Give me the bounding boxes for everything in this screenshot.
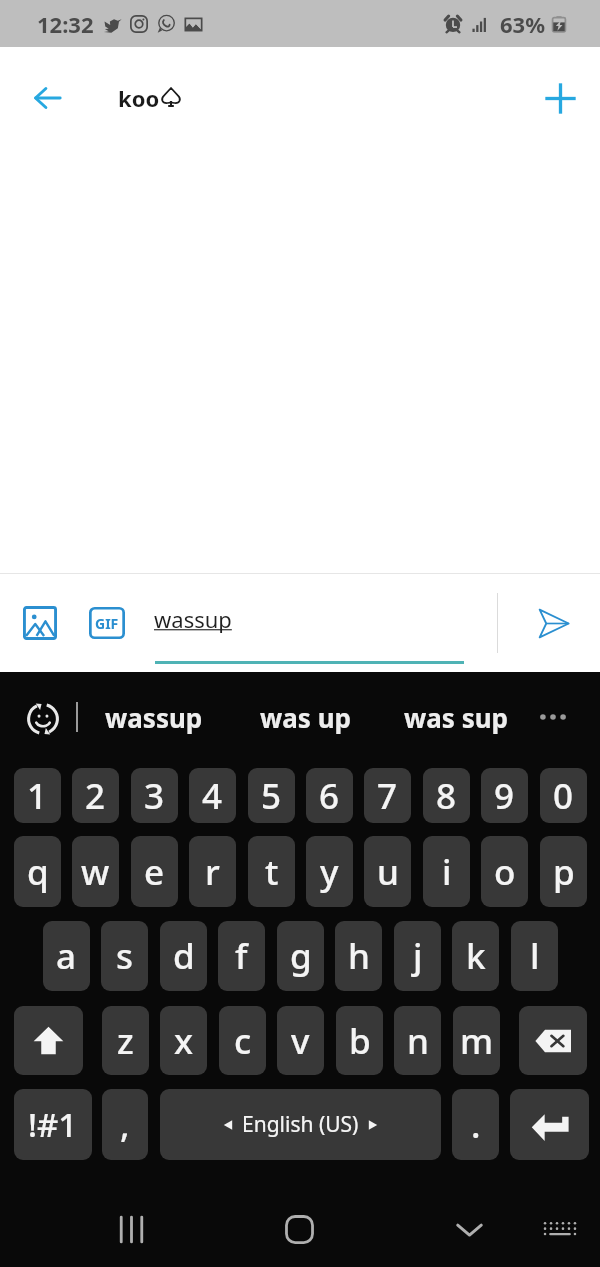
staticText: 3 xyxy=(144,772,165,820)
button[interactable]: Attach image xyxy=(14,597,66,649)
button[interactable]: Emoji xyxy=(20,696,66,742)
button[interactable]: Enter xyxy=(510,1089,589,1160)
button[interactable]: Create xyxy=(529,67,591,129)
staticText: 0 xyxy=(553,772,574,820)
staticText: w xyxy=(81,848,110,896)
staticText: wassup xyxy=(105,700,203,735)
staticText: i xyxy=(442,848,452,896)
staticText: koo xyxy=(118,83,160,113)
staticText: 6 xyxy=(319,772,340,820)
button[interactable]: h xyxy=(335,921,382,991)
button[interactable]: Back xyxy=(16,67,78,129)
staticText: r xyxy=(205,848,220,896)
button[interactable]: j xyxy=(394,921,441,991)
button[interactable]: 2 xyxy=(72,768,119,823)
button[interactable]: c xyxy=(219,1006,266,1075)
staticText: 8 xyxy=(436,772,457,820)
button[interactable]: l xyxy=(511,921,558,991)
staticText: 5 xyxy=(261,772,282,820)
button[interactable]: s xyxy=(101,921,148,991)
staticText: s xyxy=(116,932,134,980)
button[interactable]: q xyxy=(14,836,61,907)
button[interactable]: 4 xyxy=(189,768,236,823)
staticText: 1 xyxy=(27,772,48,820)
button[interactable]: Attach GIF xyxy=(81,597,133,649)
button[interactable]: a xyxy=(43,921,90,991)
staticText: was sup xyxy=(404,700,509,735)
button[interactable]: z xyxy=(102,1006,149,1075)
staticText: 7 xyxy=(377,772,398,820)
button[interactable]: 0 xyxy=(540,768,587,823)
staticText: GIF xyxy=(95,614,119,633)
staticText: y xyxy=(320,848,339,896)
button[interactable]: w xyxy=(72,836,119,907)
staticText: o xyxy=(494,848,516,896)
button[interactable]: was sup xyxy=(404,696,509,738)
button[interactable]: t xyxy=(248,836,295,907)
staticText: x xyxy=(174,1017,194,1065)
button[interactable]: m xyxy=(453,1006,500,1075)
staticText: 9 xyxy=(494,772,515,820)
staticText: , xyxy=(120,1101,130,1149)
button[interactable]: Backspace xyxy=(519,1006,587,1075)
staticText: !#1 xyxy=(28,1102,78,1147)
button[interactable]: wassup xyxy=(105,696,203,738)
button[interactable]: Recents xyxy=(107,1205,155,1253)
staticText: k xyxy=(466,932,486,980)
button[interactable]: Hide keyboard xyxy=(445,1205,493,1253)
button[interactable]: 3 xyxy=(131,768,178,823)
button[interactable]: Space xyxy=(160,1089,441,1160)
staticText: wassup xyxy=(154,604,232,634)
staticText: f xyxy=(235,932,248,980)
staticText: 2 xyxy=(85,772,106,820)
button[interactable]: k xyxy=(452,921,499,991)
button[interactable]: r xyxy=(189,836,236,907)
staticText: p xyxy=(553,848,575,896)
button[interactable]: 7 xyxy=(364,768,411,823)
button[interactable]: d xyxy=(160,921,207,991)
button[interactable]: 8 xyxy=(423,768,470,823)
staticText: h xyxy=(348,932,370,980)
button[interactable]: v xyxy=(277,1006,324,1075)
staticText: 63% xyxy=(500,9,546,39)
button[interactable]: Shift xyxy=(14,1006,83,1075)
staticText: v xyxy=(291,1017,310,1065)
button[interactable]: was up xyxy=(260,696,351,738)
button[interactable]: Home xyxy=(275,1205,323,1253)
button[interactable]: y xyxy=(306,836,353,907)
button[interactable]: f xyxy=(218,921,265,991)
button[interactable]: g xyxy=(277,921,324,991)
button[interactable]: p xyxy=(540,836,587,907)
staticText: c xyxy=(234,1017,252,1065)
button[interactable]: !#1 xyxy=(14,1089,92,1160)
staticText: l xyxy=(530,932,540,980)
button[interactable]: u xyxy=(364,836,411,907)
button[interactable]: , xyxy=(102,1089,148,1160)
staticText: a xyxy=(56,932,77,980)
button[interactable]: Send xyxy=(523,593,583,653)
button[interactable]: x xyxy=(160,1006,207,1075)
button[interactable]: Switch keyboard xyxy=(536,1205,584,1253)
staticText: z xyxy=(117,1017,134,1065)
button[interactable]: n xyxy=(394,1006,441,1075)
staticText: m xyxy=(460,1017,494,1065)
button[interactable]: 9 xyxy=(481,768,528,823)
staticText: was up xyxy=(260,700,351,735)
staticText: j xyxy=(413,932,423,980)
staticText: b xyxy=(349,1017,371,1065)
button[interactable]: 6 xyxy=(306,768,353,823)
button[interactable]: 1 xyxy=(14,768,61,823)
staticText: u xyxy=(377,848,399,896)
button[interactable]: i xyxy=(423,836,470,907)
staticText: t xyxy=(265,848,279,896)
button[interactable]: b xyxy=(336,1006,383,1075)
button[interactable]: o xyxy=(481,836,528,907)
staticText: n xyxy=(407,1017,429,1065)
button[interactable]: e xyxy=(131,836,178,907)
button[interactable]: . xyxy=(452,1089,499,1160)
button[interactable]: koo xyxy=(118,83,180,113)
button[interactable]: More suggestions xyxy=(530,694,576,740)
button[interactable]: 5 xyxy=(248,768,295,823)
staticText: English (US) xyxy=(242,1110,359,1139)
staticText: q xyxy=(27,848,49,896)
